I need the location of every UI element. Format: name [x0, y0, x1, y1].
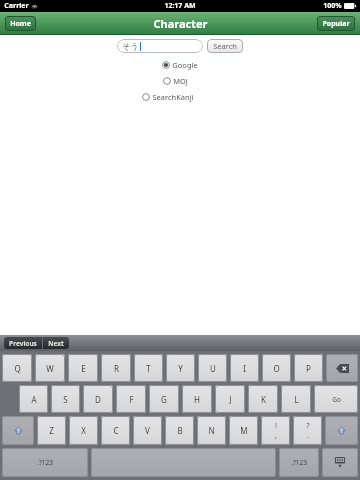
staticText: !: [275, 421, 277, 431]
staticText: S: [63, 394, 68, 405]
button[interactable]: K: [248, 385, 278, 413]
staticText: V: [145, 425, 150, 436]
button[interactable]: P: [294, 354, 323, 382]
staticText: Popular: [322, 19, 350, 29]
button[interactable]: O: [262, 354, 291, 382]
button[interactable]: Backspace: [326, 354, 358, 382]
staticText: A: [31, 394, 37, 405]
button[interactable]: G: [149, 385, 179, 413]
button[interactable]: Google: [162, 60, 198, 70]
staticText: L: [294, 394, 299, 405]
staticText: C: [113, 425, 119, 436]
staticText: .?123: [291, 458, 307, 467]
button[interactable]: H: [182, 385, 212, 413]
staticText: B: [177, 425, 183, 436]
button[interactable]: Shift: [325, 416, 358, 445]
staticText: Q: [14, 363, 21, 374]
button[interactable]: Q: [2, 354, 32, 382]
button[interactable]: ?: [293, 416, 322, 445]
staticText: D: [95, 394, 101, 405]
staticText: O: [273, 363, 280, 374]
button[interactable]: X: [69, 416, 98, 445]
staticText: Home: [10, 19, 31, 29]
button[interactable]: U: [198, 354, 227, 382]
staticText: E: [81, 363, 86, 374]
button[interactable]: Next: [43, 337, 69, 349]
button[interactable]: Y: [166, 354, 195, 382]
button[interactable]: J: [215, 385, 245, 413]
button[interactable]: !: [261, 416, 290, 445]
staticText: Next: [48, 339, 64, 348]
staticText: J: [229, 394, 232, 405]
button[interactable]: .?123: [2, 448, 88, 477]
button[interactable]: Shift: [2, 416, 34, 445]
staticText: Search: [213, 41, 237, 51]
button[interactable]: Z: [37, 416, 66, 445]
staticText: N: [208, 425, 215, 436]
button[interactable]: B: [165, 416, 194, 445]
button[interactable]: R: [101, 354, 131, 382]
button[interactable]: I: [230, 354, 259, 382]
button[interactable]: C: [101, 416, 130, 445]
staticText: K: [261, 394, 266, 405]
button[interactable]: MOJ: [163, 76, 188, 86]
button[interactable]: M: [229, 416, 258, 445]
staticText: Google: [172, 60, 198, 70]
staticText: ,: [275, 431, 277, 441]
staticText: P: [306, 363, 311, 374]
staticText: U: [210, 363, 216, 374]
button[interactable]: E: [68, 354, 98, 382]
staticText: 100%: [323, 1, 342, 11]
button[interactable]: V: [133, 416, 162, 445]
staticText: M: [240, 425, 248, 436]
button[interactable]: Popular: [317, 16, 355, 31]
button[interactable]: Space: [91, 448, 276, 477]
button[interactable]: A: [19, 385, 48, 413]
button[interactable]: .?123: [279, 448, 319, 477]
staticText: Previous: [9, 339, 37, 348]
staticText: MOJ: [173, 76, 188, 86]
staticText: そう: [122, 41, 139, 51]
staticText: X: [81, 425, 86, 436]
staticText: F: [129, 394, 134, 405]
button[interactable]: Go: [314, 385, 358, 413]
staticText: Z: [49, 425, 54, 436]
staticText: T: [146, 363, 151, 374]
button[interactable]: そう: [117, 39, 203, 53]
staticText: .: [307, 431, 309, 441]
staticText: G: [161, 394, 167, 405]
staticText: 12:17 AM: [164, 1, 196, 11]
button[interactable]: L: [281, 385, 311, 413]
button[interactable]: Hide keyboard: [322, 448, 358, 477]
button[interactable]: F: [116, 385, 146, 413]
staticText: H: [194, 394, 200, 405]
staticText: ?: [306, 421, 310, 431]
button[interactable]: Search: [207, 39, 243, 53]
button[interactable]: W: [35, 354, 65, 382]
staticText: R: [114, 363, 119, 374]
staticText: I: [243, 363, 246, 374]
staticText: Go: [332, 395, 341, 404]
staticText: W: [46, 363, 54, 374]
staticText: Carrier: [4, 1, 29, 11]
button[interactable]: D: [83, 385, 113, 413]
button[interactable]: T: [134, 354, 163, 382]
staticText: Y: [178, 363, 183, 374]
button[interactable]: Home: [5, 16, 36, 31]
button[interactable]: Previous: [4, 337, 42, 349]
staticText: .?123: [37, 458, 53, 467]
staticText: Character: [153, 16, 208, 31]
staticText: SearchKanji: [152, 92, 194, 102]
button[interactable]: S: [51, 385, 80, 413]
button[interactable]: N: [197, 416, 226, 445]
button[interactable]: SearchKanji: [142, 92, 194, 102]
